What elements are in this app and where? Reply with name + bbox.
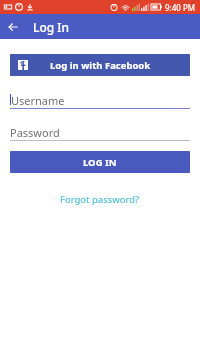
button[interactable]: LOG IN <box>10 151 190 173</box>
staticText: 9:40 PM <box>165 2 196 13</box>
staticText: Password <box>10 125 60 138</box>
staticText: Username <box>11 93 65 106</box>
staticText: LOG IN <box>83 156 117 169</box>
staticText: Log in with Facebook <box>50 59 151 72</box>
button[interactable]: Log in with Facebook <box>10 54 190 76</box>
staticText: Forgot password? <box>60 193 140 206</box>
button[interactable]: Password <box>10 125 190 138</box>
button[interactable]: Forgot password? <box>10 190 190 209</box>
button[interactable]: Navigate up <box>0 14 25 39</box>
staticText: Log In <box>33 19 70 35</box>
button[interactable]: Username <box>10 93 190 106</box>
